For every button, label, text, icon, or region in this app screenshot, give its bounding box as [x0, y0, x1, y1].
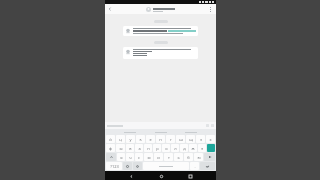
- staticText: д: [183, 146, 186, 151]
- staticText: о: [165, 146, 168, 151]
- staticText: .: [194, 164, 196, 169]
- staticText: с: [138, 155, 140, 160]
- button[interactable]: т: [164, 153, 173, 161]
- button[interactable]: Space: [143, 162, 189, 170]
- button[interactable]: Key: [133, 162, 142, 170]
- button[interactable]: Send: [207, 144, 215, 152]
- button[interactable]: Key: [106, 153, 116, 161]
- button[interactable]: ч: [126, 153, 134, 161]
- staticText: з: [200, 137, 202, 142]
- button[interactable]: м: [144, 153, 153, 161]
- button[interactable]: л: [171, 144, 179, 152]
- button[interactable]: Back: [127, 172, 135, 180]
- button[interactable]: а: [135, 144, 143, 152]
- button[interactable]: Attach: [105, 122, 216, 129]
- staticText: б: [187, 155, 190, 160]
- staticText: р: [156, 146, 159, 151]
- button[interactable]: п: [144, 144, 152, 152]
- button[interactable]: щ: [186, 135, 195, 143]
- staticText: л: [174, 146, 177, 151]
- staticText: й: [109, 137, 112, 142]
- staticText: у: [129, 137, 132, 142]
- button[interactable]: з: [196, 135, 205, 143]
- button[interactable]: ш: [176, 135, 185, 143]
- button[interactable]: ?123: [106, 162, 122, 170]
- staticText: х: [209, 137, 212, 142]
- staticText: к: [139, 137, 142, 142]
- button[interactable]: Key: [204, 153, 215, 161]
- button[interactable]: Back: [106, 5, 114, 13]
- staticText: ь: [177, 155, 180, 160]
- button[interactable]: [123, 47, 198, 59]
- staticText: м: [147, 155, 151, 160]
- button[interactable]: ж: [189, 144, 197, 152]
- staticText: ж: [191, 146, 195, 151]
- button[interactable]: х: [206, 135, 215, 143]
- staticText: ы: [119, 146, 123, 151]
- button[interactable]: д: [180, 144, 188, 152]
- staticText: и: [157, 155, 160, 160]
- button[interactable]: к: [136, 135, 145, 143]
- button[interactable]: ф: [106, 144, 115, 152]
- button[interactable]: я: [117, 153, 125, 161]
- button[interactable]: Key: [200, 162, 215, 170]
- staticText: а: [138, 146, 141, 151]
- button[interactable]: ю: [194, 153, 203, 161]
- button[interactable]: у: [126, 135, 135, 143]
- button[interactable]: р: [153, 144, 161, 152]
- staticText: э: [201, 146, 203, 151]
- staticText: г: [170, 137, 172, 142]
- staticText: ю: [197, 155, 201, 160]
- staticText: в: [129, 146, 132, 151]
- button[interactable]: о: [162, 144, 170, 152]
- button[interactable]: в: [126, 144, 134, 152]
- staticText: т: [168, 155, 170, 160]
- staticText: ч: [129, 155, 132, 160]
- button[interactable]: ц: [116, 135, 125, 143]
- staticText: ц: [119, 137, 122, 142]
- staticText: ш: [179, 137, 183, 142]
- button[interactable]: с: [135, 153, 143, 161]
- button[interactable]: ы: [116, 144, 125, 152]
- staticText: я: [120, 155, 123, 160]
- staticText: ?123: [110, 164, 119, 169]
- button[interactable]: н: [156, 135, 165, 143]
- button[interactable]: э: [198, 144, 206, 152]
- button[interactable]: ь: [174, 153, 183, 161]
- button[interactable]: г: [166, 135, 175, 143]
- button[interactable]: More options: [206, 5, 214, 13]
- button[interactable]: Home: [157, 172, 165, 180]
- button[interactable]: е: [146, 135, 155, 143]
- button[interactable]: б: [184, 153, 193, 161]
- staticText: н: [159, 137, 162, 142]
- staticText: е: [149, 137, 152, 142]
- button[interactable]: й: [106, 135, 115, 143]
- button[interactable]: Recents: [186, 172, 194, 180]
- staticText: щ: [189, 137, 193, 142]
- button[interactable]: Key: [123, 162, 132, 170]
- staticText: ф: [109, 146, 112, 151]
- button[interactable]: [123, 26, 198, 36]
- staticText: п: [147, 146, 150, 151]
- button[interactable]: и: [154, 153, 163, 161]
